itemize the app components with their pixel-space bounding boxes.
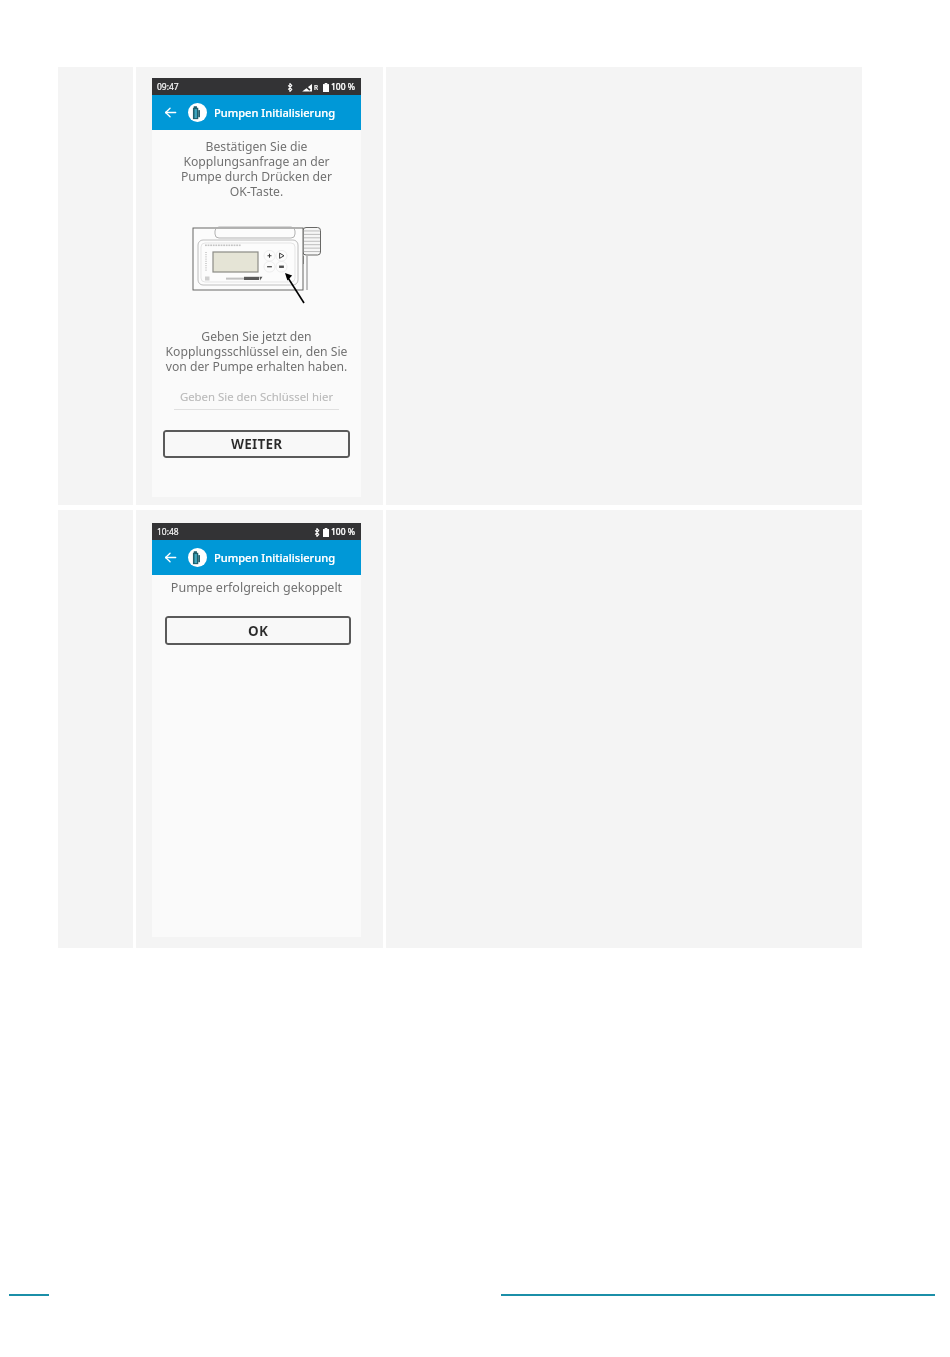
- staticText: 100 %: [331, 81, 356, 93]
- staticText: Geben Sie jetzt den Kopplungsschlüssel e…: [152, 328, 361, 374]
- staticText: Pumpen Initialisierung: [214, 105, 336, 120]
- staticText: Pumpe erfolgreich gekoppelt: [152, 579, 361, 596]
- button[interactable]: WEITER: [163, 430, 350, 458]
- button[interactable]: Zurück: [158, 540, 182, 575]
- button[interactable]: OK: [165, 616, 351, 645]
- staticText: WEITER: [231, 435, 283, 453]
- button[interactable]: Zurück: [158, 95, 182, 130]
- staticText: Pumpen Initialisierung: [214, 550, 336, 565]
- staticText: 09:47: [157, 81, 179, 93]
- staticText: 100 %: [331, 526, 356, 538]
- staticText: 10:48: [157, 526, 179, 538]
- staticText: R: [314, 83, 319, 92]
- staticText: Bestätigen Sie die Kopplungsanfrage an d…: [152, 138, 361, 199]
- staticText: Geben Sie den Schlüssel hier: [174, 389, 339, 405]
- staticText: OK: [248, 622, 269, 640]
